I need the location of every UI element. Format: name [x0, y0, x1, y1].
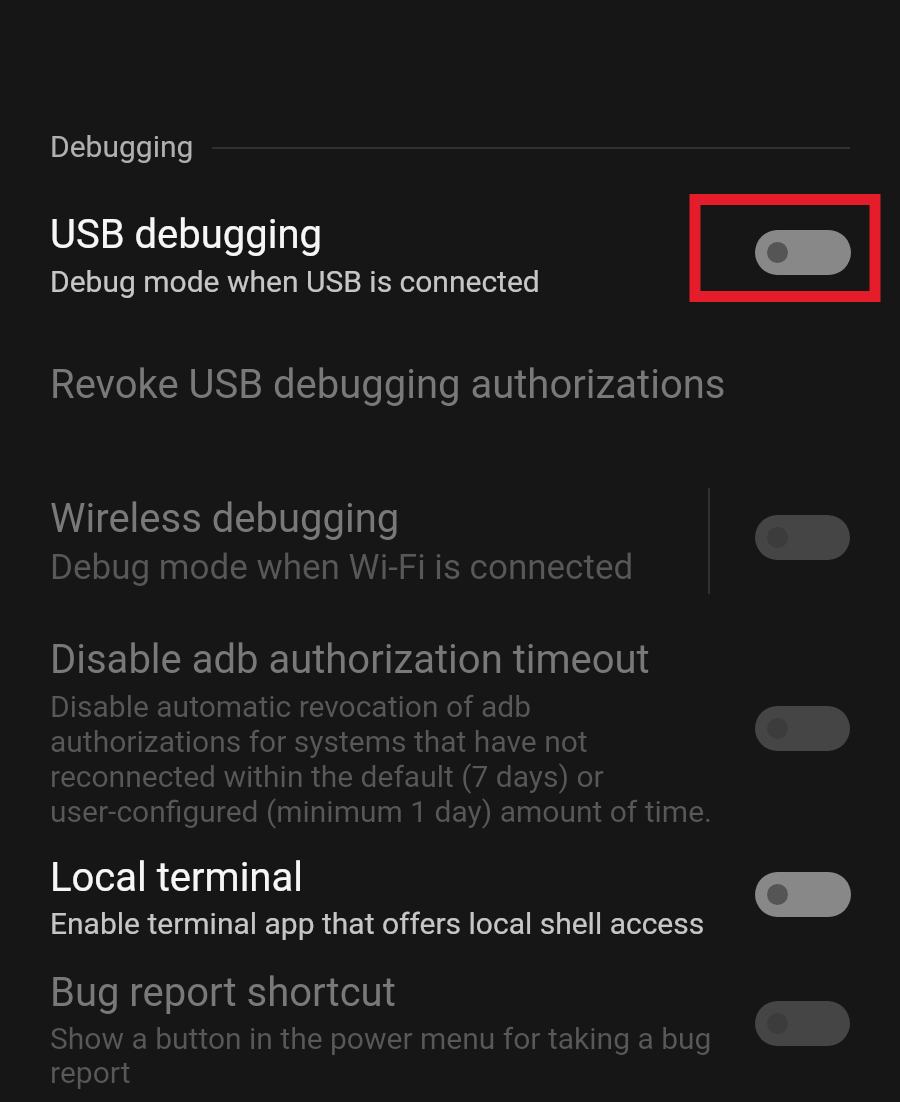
button[interactable]: Local terminal switch, off [755, 872, 851, 917]
staticText: Debug mode when USB is connected [50, 264, 540, 299]
button[interactable] [0, 196, 900, 304]
button[interactable] [0, 348, 900, 422]
button[interactable]: USB debugging switch, off [755, 230, 851, 275]
button[interactable] [0, 844, 900, 948]
staticText: Disable automatic revocation of adb auth… [50, 689, 712, 829]
staticText: Wireless debugging [50, 495, 400, 542]
staticText: Revoke USB debugging authorizations [50, 361, 726, 408]
button[interactable]: Bug report shortcut switch, off [755, 1001, 850, 1046]
staticText: Show a button in the power menu for taki… [50, 1021, 712, 1090]
staticText: Disable adb authorization timeout [50, 636, 650, 683]
staticText: Debugging [50, 129, 194, 164]
staticText: Debug mode when Wi-Fi is connected [50, 547, 634, 588]
staticText: Local terminal [50, 854, 303, 901]
button[interactable] [0, 630, 900, 830]
staticText: Bug report shortcut [50, 969, 396, 1016]
button[interactable]: Wireless debugging switch, off [755, 515, 850, 560]
staticText: Enable terminal app that offers local sh… [50, 906, 705, 941]
staticText: USB debugging [50, 211, 323, 258]
button[interactable] [0, 958, 900, 1102]
button[interactable]: Disable adb authorization timeout switch… [755, 706, 850, 751]
button[interactable] [0, 482, 900, 592]
